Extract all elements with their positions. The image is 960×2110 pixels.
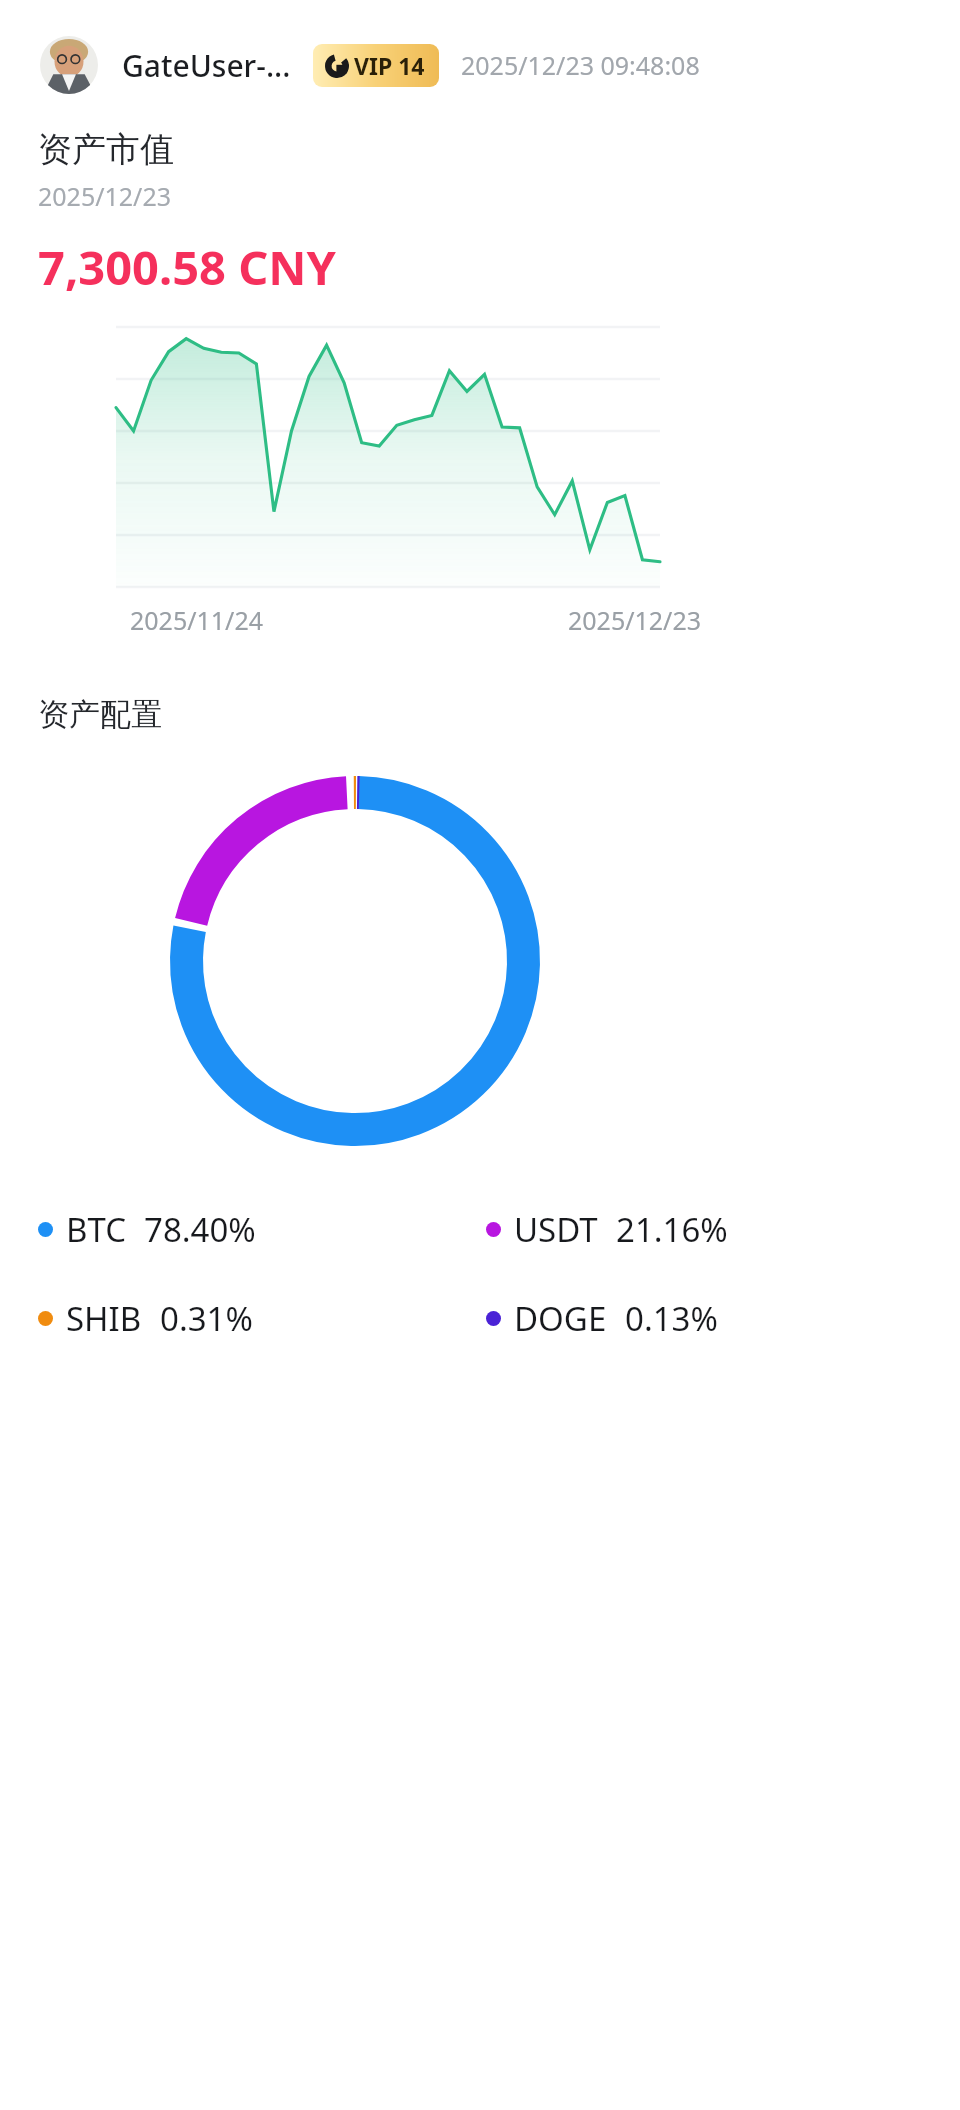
staticText: 2025/12/23 xyxy=(38,179,172,213)
staticText: DOGE xyxy=(514,1296,607,1341)
staticText: 21.16% xyxy=(616,1207,728,1252)
staticText: 0.13% xyxy=(625,1296,718,1341)
staticText: GateUser-... xyxy=(122,45,291,86)
button[interactable]: USDT xyxy=(486,1204,934,1255)
staticText: 2025/11/24 xyxy=(130,603,264,637)
staticText: VIP 14 xyxy=(354,50,425,81)
staticText: BTC xyxy=(66,1207,126,1252)
staticText: 78.40% xyxy=(144,1207,256,1252)
button[interactable]: Profile avatar xyxy=(40,36,98,94)
staticText: 资产市值 xyxy=(38,128,174,171)
staticText: 0.31% xyxy=(160,1296,253,1341)
staticText: 资产配置 xyxy=(38,695,162,734)
button[interactable]: VIP 14 xyxy=(313,44,439,87)
staticText: 2025/12/23 09:48:08 xyxy=(461,48,700,82)
staticText: SHIB xyxy=(66,1296,142,1341)
button[interactable]: DOGE xyxy=(486,1293,934,1344)
staticText: USDT xyxy=(514,1207,598,1252)
other: Asset allocation donut chart xyxy=(170,776,540,1146)
button[interactable]: BTC xyxy=(38,1204,486,1255)
staticText: 7,300.58 CNY xyxy=(38,235,336,299)
button[interactable]: SHIB xyxy=(38,1293,486,1344)
staticText: 2025/12/23 xyxy=(568,603,702,637)
